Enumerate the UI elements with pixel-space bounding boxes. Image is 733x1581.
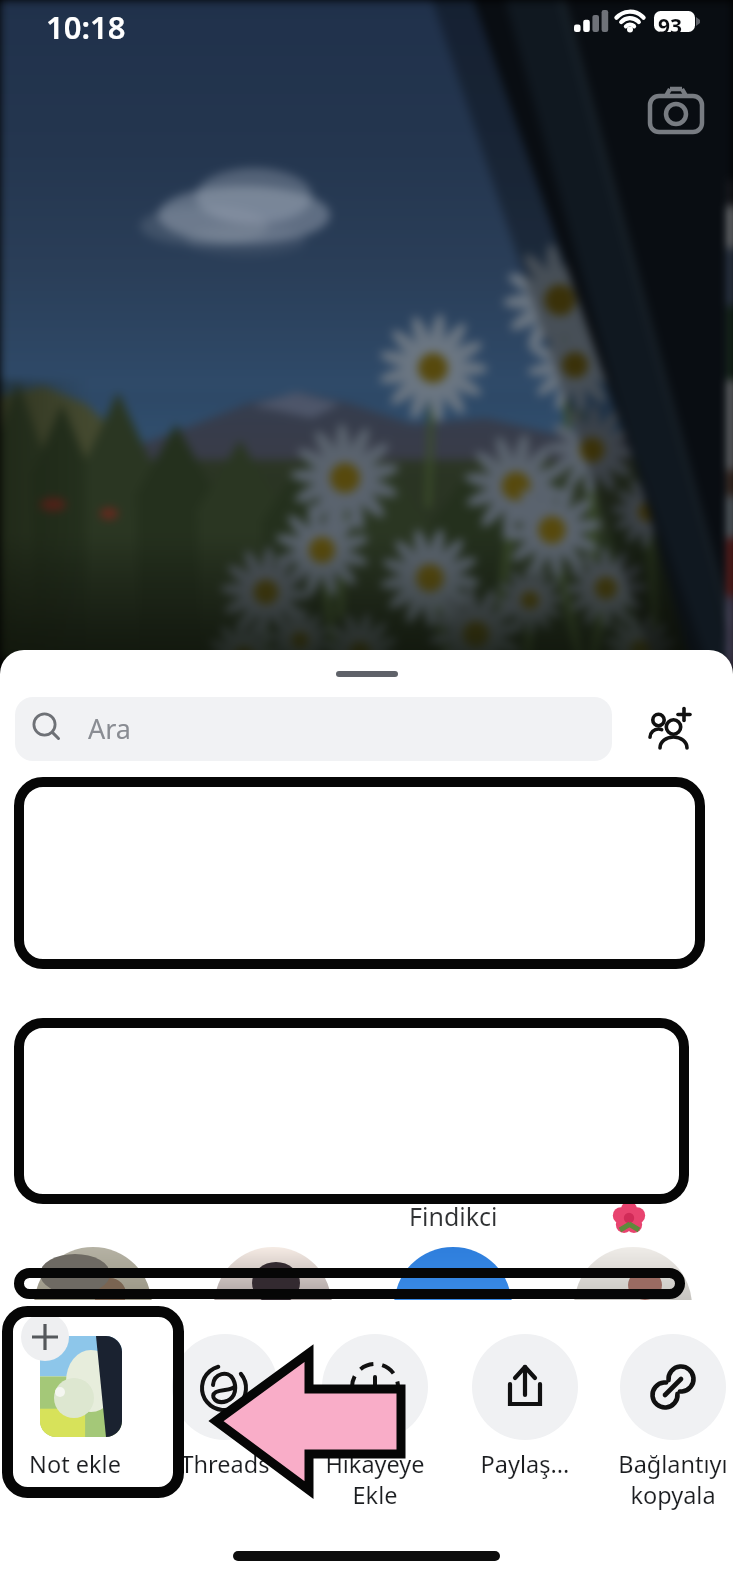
staticText: Hikayeye Ekle: [289, 1448, 461, 1511]
button[interactable]: Threads: [139, 1334, 311, 1540]
button[interactable]: Camera: [648, 84, 704, 140]
staticText: Ara: [88, 710, 132, 747]
staticText: Findikci: [409, 1199, 498, 1233]
staticText: Bağlantıyı kopyala: [587, 1448, 733, 1511]
staticText: Threads: [139, 1448, 311, 1480]
button[interactable]: Hikayeye Ekle: [289, 1334, 461, 1540]
button[interactable]: Paylaş...: [439, 1334, 611, 1540]
button[interactable]: Ara: [15, 697, 612, 761]
staticText: 10:18: [46, 6, 126, 48]
staticText: 93: [658, 12, 683, 41]
staticText: Paylaş...: [439, 1448, 611, 1480]
button[interactable]: Not ekle: [0, 1334, 161, 1540]
button[interactable]: Add people: [612, 697, 733, 761]
button[interactable]: Bağlantıyı kopyala: [587, 1334, 733, 1540]
staticText: Not ekle: [0, 1448, 161, 1480]
